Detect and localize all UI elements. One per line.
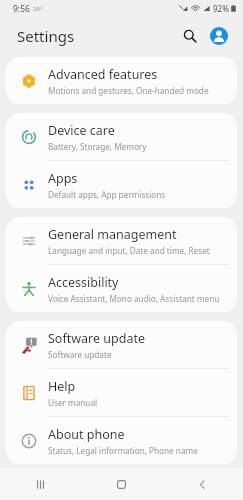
staticText: Device care: [48, 122, 115, 139]
button[interactable]: Help: [6, 369, 237, 416]
staticText: 92%: [213, 3, 229, 14]
button[interactable]: General management: [6, 217, 237, 264]
button[interactable]: Device care: [6, 113, 237, 160]
staticText: General management: [48, 226, 177, 243]
staticText: Apps: [48, 170, 78, 187]
staticText: User manual: [48, 397, 98, 408]
button[interactable]: Back: [162, 468, 243, 500]
staticText: Motions and gestures, One-handed mode: [48, 85, 209, 96]
button[interactable]: Apps: [6, 161, 237, 208]
button[interactable]: Home: [81, 468, 162, 500]
staticText: About phone: [48, 426, 125, 443]
button[interactable]: Advanced features: [6, 57, 237, 104]
staticText: 9:56: [13, 3, 30, 15]
staticText: Settings: [17, 26, 75, 46]
staticText: Software update: [48, 330, 145, 347]
staticText: 26°: [33, 5, 43, 13]
staticText: Status, Legal information, Phone name: [48, 445, 198, 456]
staticText: Voice Assistant, Mono audio, Assistant m…: [48, 293, 220, 304]
button[interactable]: Recent apps: [0, 468, 81, 500]
staticText: Default apps, App permissions: [48, 189, 166, 200]
staticText: Software update: [48, 349, 112, 360]
staticText: Advanced features: [48, 66, 158, 83]
staticText: Accessibility: [48, 274, 119, 291]
button[interactable]: Account: [205, 22, 233, 50]
button[interactable]: Accessibility: [6, 265, 237, 312]
button[interactable]: Search: [176, 22, 204, 50]
staticText: Language and input, Date and time, Reset: [48, 245, 210, 256]
staticText: Help: [48, 378, 76, 395]
staticText: Battery, Storage, Memory: [48, 141, 147, 152]
button[interactable]: Software update: [6, 321, 237, 368]
button[interactable]: About phone: [6, 417, 237, 464]
